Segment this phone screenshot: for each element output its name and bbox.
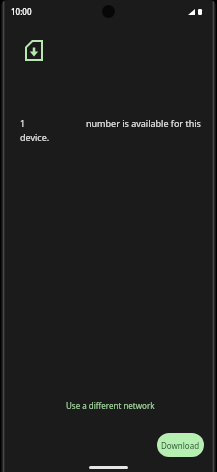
- staticText: Use a different network: [66, 400, 155, 411]
- button[interactable]: Use a different network: [58, 396, 163, 415]
- staticText: 10:00: [11, 6, 32, 17]
- other: Mobile signal: [188, 9, 195, 15]
- other: Battery: [198, 9, 202, 15]
- button[interactable]: Download: [157, 433, 204, 457]
- staticText: number is available for this: [86, 117, 201, 129]
- staticText: device.: [20, 131, 50, 143]
- staticText: Download: [161, 440, 200, 451]
- staticText: 1: [20, 117, 26, 129]
- other: Download to device: [25, 40, 43, 61]
